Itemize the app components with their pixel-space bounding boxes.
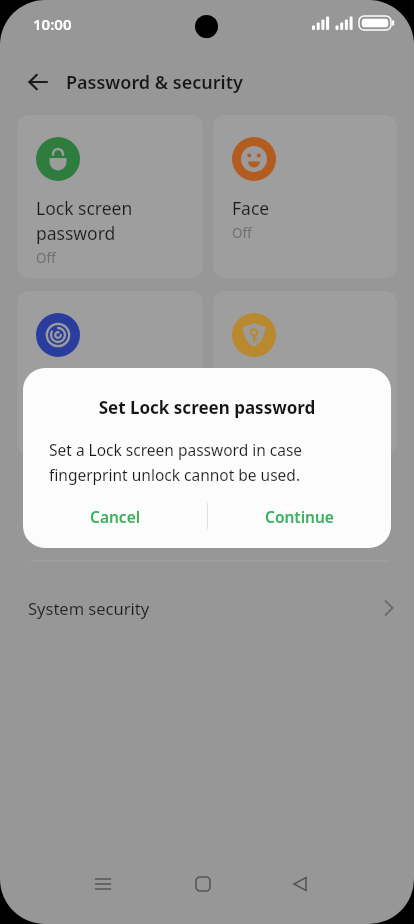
button[interactable]: [20, 64, 56, 100]
staticText: Password & security: [66, 70, 243, 95]
staticText: Continue: [265, 506, 334, 527]
button[interactable]: Lock screen password: [17, 115, 203, 278]
button[interactable]: System security: [0, 590, 414, 626]
button[interactable]: Fingerprint: [17, 291, 203, 454]
button[interactable]: Privacy: [213, 291, 397, 454]
button[interactable]: Face: [213, 115, 397, 278]
staticText: Lock screen password: [36, 196, 133, 245]
button[interactable]: Cancel: [23, 497, 207, 535]
staticText: Set Lock screen password: [23, 396, 391, 419]
staticText: Off: [232, 400, 252, 418]
staticText: Cancel: [90, 506, 141, 527]
staticText: Face: [232, 196, 270, 220]
staticText: Set a Lock screen password in case finge…: [49, 439, 371, 485]
staticText: Off: [36, 249, 56, 267]
button[interactable]: Continue: [207, 497, 391, 535]
staticText: 10:00: [33, 14, 72, 34]
staticText: System security: [28, 597, 150, 619]
staticText: Off: [232, 224, 252, 242]
